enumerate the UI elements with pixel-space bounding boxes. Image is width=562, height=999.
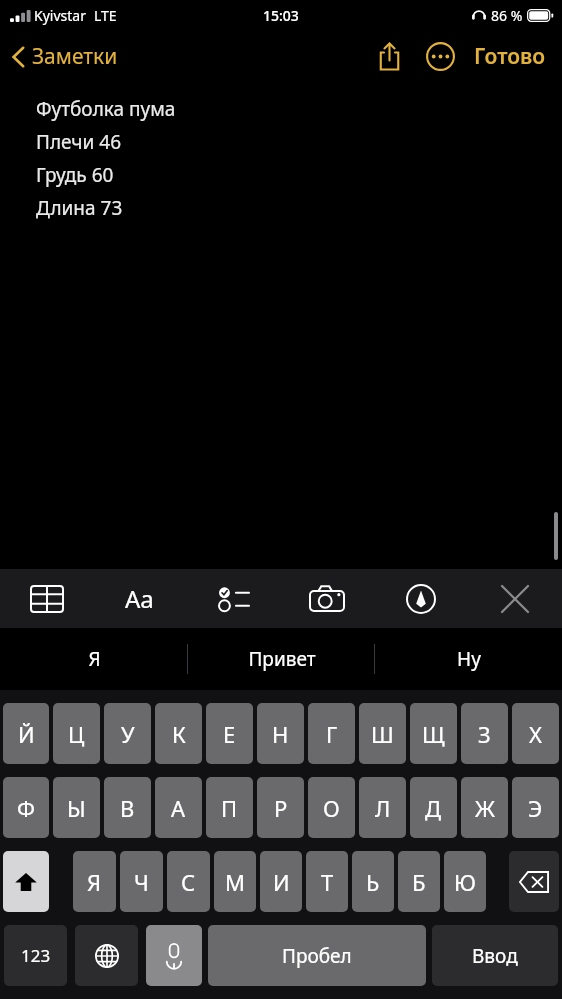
- button[interactable]: В: [104, 777, 151, 838]
- staticText: Г: [326, 719, 338, 749]
- button[interactable]: Т: [306, 851, 348, 912]
- staticText: В: [120, 793, 135, 823]
- button[interactable]: А: [155, 777, 202, 838]
- staticText: У: [121, 719, 135, 749]
- staticText: Ы: [67, 793, 86, 823]
- button[interactable]: Р: [257, 777, 304, 838]
- button[interactable]: Camera: [280, 569, 374, 628]
- button[interactable]: Ввод: [432, 925, 558, 986]
- staticText: Привет: [248, 646, 316, 672]
- staticText: Ц: [68, 719, 85, 749]
- staticText: К: [172, 719, 186, 749]
- staticText: Н: [272, 719, 289, 749]
- button[interactable]: П: [206, 777, 253, 838]
- button[interactable]: Shift: [3, 851, 49, 912]
- button[interactable]: Close: [468, 569, 562, 628]
- staticText: Ь: [366, 867, 380, 897]
- staticText: С: [181, 867, 196, 897]
- button[interactable]: Markup: [374, 569, 468, 628]
- button[interactable]: Ч: [120, 851, 163, 912]
- staticText: З: [478, 719, 491, 749]
- button[interactable]: Заметки: [0, 36, 128, 77]
- button[interactable]: М: [214, 851, 256, 912]
- staticText: Ш: [371, 719, 394, 749]
- button[interactable]: Ф: [3, 777, 49, 838]
- button[interactable]: О: [308, 777, 355, 838]
- staticText: Заметки: [32, 42, 118, 71]
- staticText: Й: [18, 719, 35, 749]
- staticText: Б: [412, 867, 426, 897]
- button[interactable]: Change keyboard language: [75, 925, 138, 986]
- staticText: И: [273, 867, 290, 897]
- button[interactable]: Пробел: [208, 925, 426, 986]
- button[interactable]: Table: [0, 569, 93, 628]
- button[interactable]: Г: [308, 703, 355, 764]
- button[interactable]: Я: [0, 628, 188, 690]
- staticText: Ч: [134, 867, 149, 897]
- button[interactable]: Готово: [468, 36, 562, 77]
- button[interactable]: Ц: [53, 703, 100, 764]
- button[interactable]: Ш: [359, 703, 406, 764]
- staticText: Л: [375, 793, 391, 823]
- button[interactable]: У: [104, 703, 151, 764]
- button[interactable]: С: [167, 851, 210, 912]
- button[interactable]: Б: [398, 851, 440, 912]
- button[interactable]: Й: [3, 703, 49, 764]
- staticText: Длина 73: [36, 195, 123, 221]
- button[interactable]: Checklist: [186, 569, 280, 628]
- staticText: М: [225, 867, 245, 897]
- button[interactable]: Л: [359, 777, 406, 838]
- button[interactable]: З: [461, 703, 508, 764]
- button[interactable]: Backspace: [509, 851, 559, 912]
- button[interactable]: Э: [512, 777, 559, 838]
- staticText: П: [221, 793, 238, 823]
- button[interactable]: Ю: [444, 851, 486, 912]
- button[interactable]: Щ: [410, 703, 457, 764]
- button[interactable]: Привет: [188, 628, 375, 690]
- staticText: Я: [88, 646, 101, 672]
- staticText: Ввод: [472, 943, 518, 969]
- staticText: Пробел: [282, 943, 352, 969]
- button[interactable]: Х: [512, 703, 559, 764]
- staticText: Плечи 46: [36, 129, 122, 155]
- button[interactable]: Ж: [461, 777, 508, 838]
- staticText: А: [171, 793, 186, 823]
- staticText: 123: [21, 944, 51, 967]
- button[interactable]: Д: [410, 777, 457, 838]
- staticText: Футболка пума: [36, 96, 176, 122]
- staticText: Д: [425, 793, 442, 823]
- staticText: Х: [529, 719, 542, 749]
- staticText: Aa: [125, 582, 154, 615]
- staticText: Р: [274, 793, 288, 823]
- button[interactable]: Е: [206, 703, 253, 764]
- staticText: Е: [223, 719, 236, 749]
- staticText: Т: [321, 867, 334, 897]
- staticText: Ю: [454, 867, 476, 897]
- button[interactable]: More options: [413, 36, 468, 77]
- staticText: Готово: [474, 42, 546, 71]
- staticText: 15:03: [263, 6, 299, 25]
- button[interactable]: Ну: [375, 628, 562, 690]
- staticText: 86 %: [491, 6, 523, 25]
- staticText: Ну: [457, 646, 481, 672]
- staticText: Я: [87, 867, 102, 897]
- button[interactable]: Ы: [53, 777, 100, 838]
- button[interactable]: 123: [4, 925, 67, 986]
- staticText: Грудь 60: [36, 162, 114, 188]
- button[interactable]: Dictation: [146, 925, 202, 986]
- staticText: Ф: [17, 793, 35, 823]
- staticText: Щ: [422, 719, 445, 749]
- button[interactable]: Н: [257, 703, 304, 764]
- button[interactable]: Ь: [352, 851, 394, 912]
- staticText: Э: [528, 793, 543, 823]
- staticText: LTE: [94, 6, 117, 25]
- button[interactable]: Я: [73, 851, 116, 912]
- button[interactable]: К: [155, 703, 202, 764]
- button[interactable]: Share: [366, 36, 413, 77]
- staticText: О: [323, 793, 340, 823]
- button[interactable]: И: [260, 851, 302, 912]
- staticText: Kyivstar: [34, 6, 86, 25]
- button[interactable]: Format: [93, 569, 186, 628]
- staticText: Ж: [475, 793, 495, 823]
